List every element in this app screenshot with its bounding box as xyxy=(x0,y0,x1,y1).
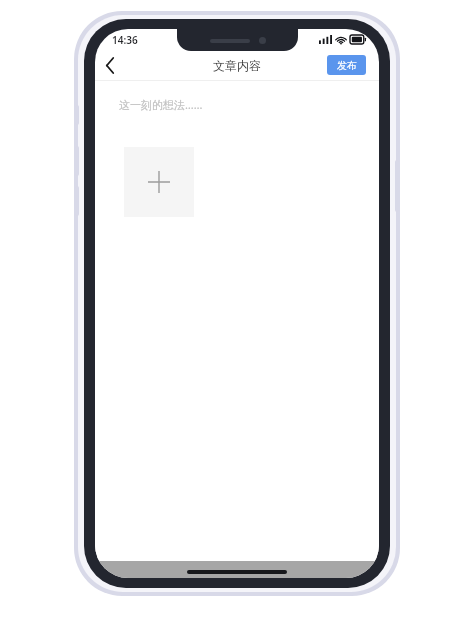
staticText: 14:36 xyxy=(112,33,138,47)
staticText: 文章内容 xyxy=(213,58,261,73)
button[interactable]: Back xyxy=(95,50,125,80)
button[interactable]: Add photo xyxy=(124,147,194,217)
staticText: 发布 xyxy=(337,59,357,72)
button[interactable]: 这一刻的想法…… xyxy=(119,97,203,112)
button[interactable]: 发布 xyxy=(327,55,366,75)
